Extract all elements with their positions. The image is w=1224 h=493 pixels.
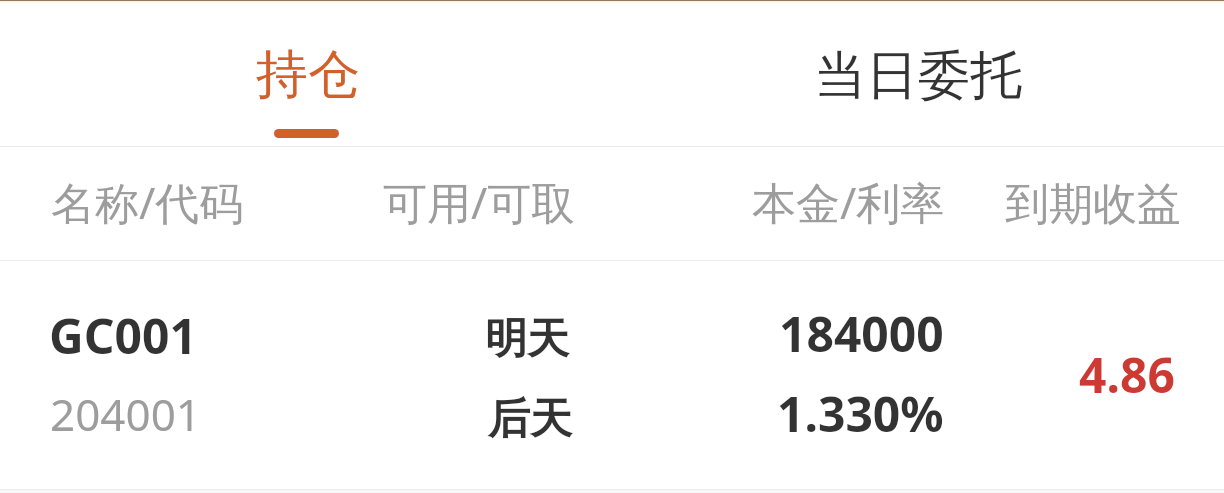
staticText: 204001 [50, 384, 202, 444]
staticText: 持仓 [256, 42, 360, 108]
button[interactable]: GC001 [0, 261, 1224, 489]
staticText: 4.86 [1079, 342, 1175, 407]
staticText: GC001 [49, 303, 197, 368]
staticText: 到期收益 [1005, 177, 1181, 232]
button[interactable]: 持仓 [0, 4, 612, 146]
staticText: 1.330% [777, 381, 944, 446]
button[interactable]: 当日委托 [612, 4, 1224, 146]
staticText: 明天 [485, 313, 569, 366]
staticText: 后天 [488, 393, 572, 446]
staticText: 本金/利率 [752, 172, 945, 232]
staticText: 名称/代码 [51, 172, 244, 232]
staticText: 可用/可取 [383, 172, 576, 232]
staticText: 当日委托 [814, 43, 1022, 109]
staticText: 184000 [779, 301, 944, 366]
